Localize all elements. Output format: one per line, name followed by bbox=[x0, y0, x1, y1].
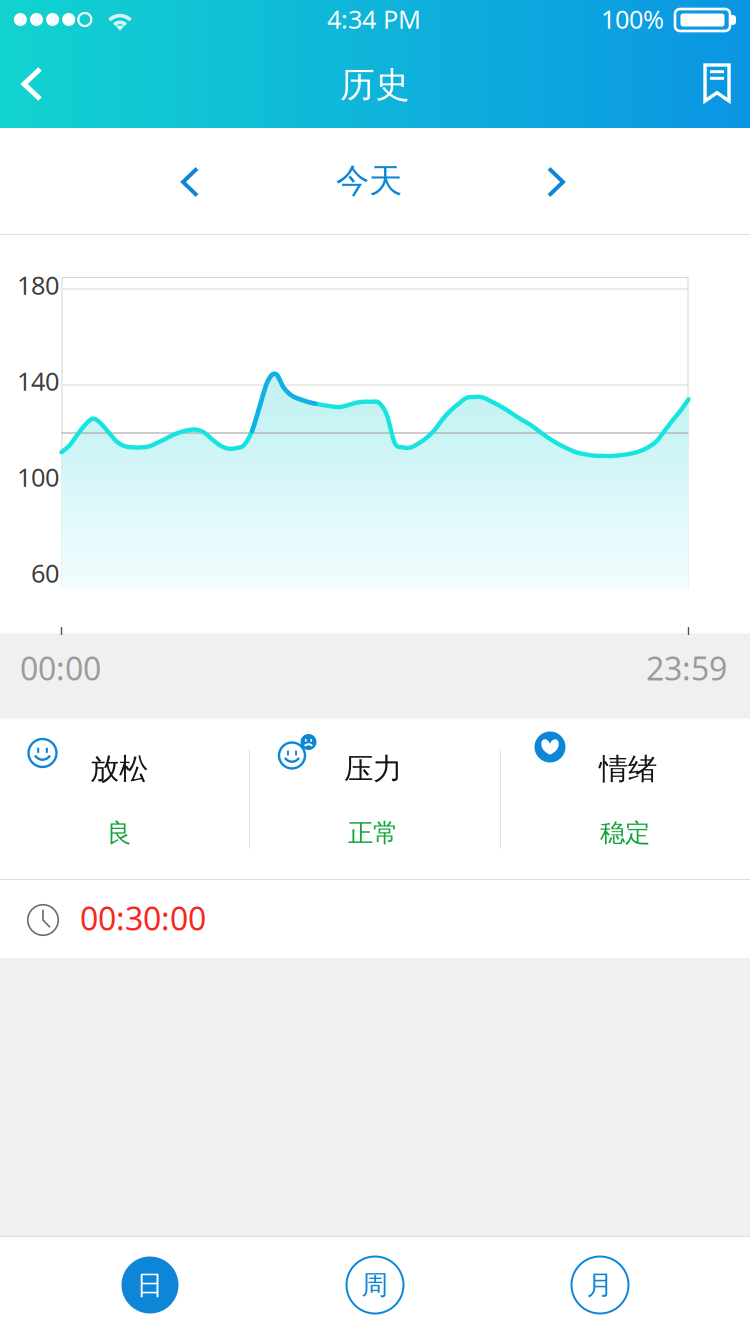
staticText: 日 bbox=[136, 1269, 163, 1301]
staticText: 140 bbox=[17, 364, 59, 398]
staticText: 周 bbox=[361, 1269, 388, 1301]
button[interactable]: Bookmark bbox=[674, 41, 750, 125]
staticText: 历史 bbox=[340, 64, 410, 106]
staticText: 100% bbox=[601, 2, 664, 36]
button[interactable]: Previous day bbox=[142, 134, 238, 230]
staticText: 放松 bbox=[90, 751, 148, 787]
staticText: 良 bbox=[106, 817, 131, 848]
staticText: 23:59 bbox=[646, 647, 727, 689]
staticText: 4:34 PM bbox=[327, 2, 421, 36]
staticText: 00:00 bbox=[20, 647, 101, 689]
staticText: 月 bbox=[586, 1269, 613, 1301]
button[interactable]: 月 bbox=[550, 1236, 650, 1333]
staticText: 60 bbox=[31, 556, 59, 590]
staticText: 今天 bbox=[336, 160, 402, 201]
staticText: 正常 bbox=[348, 817, 398, 848]
staticText: 压力 bbox=[344, 751, 402, 787]
button[interactable]: Next day bbox=[508, 134, 604, 230]
staticText: 00:30:00 bbox=[80, 897, 206, 939]
staticText: 180 bbox=[17, 268, 59, 302]
button[interactable]: 今天 bbox=[299, 146, 439, 216]
button[interactable]: 周 bbox=[325, 1236, 425, 1333]
button[interactable]: 日 bbox=[100, 1236, 200, 1333]
staticText: 稳定 bbox=[600, 817, 650, 848]
button[interactable]: Back bbox=[0, 42, 75, 126]
staticText: 情绪 bbox=[599, 751, 657, 787]
staticText: 100 bbox=[17, 460, 59, 494]
